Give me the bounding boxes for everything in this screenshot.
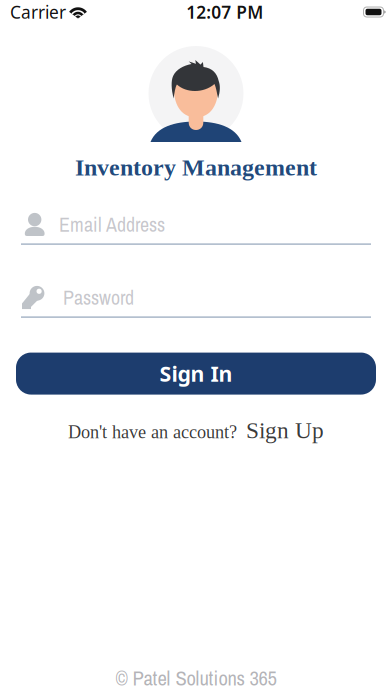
staticText: 12:07 PM <box>186 0 263 23</box>
staticText: Don't have an account? <box>68 422 237 442</box>
button[interactable]: Don't have an account? <box>68 418 324 443</box>
button[interactable]: Sign In <box>16 353 376 395</box>
staticText: Email Address <box>59 211 165 238</box>
staticText: Inventory Management <box>75 154 317 181</box>
staticText: Sign In <box>159 359 232 388</box>
staticText: Password <box>63 284 134 311</box>
staticText: Carrier <box>10 0 66 23</box>
staticText: Sign Up <box>246 418 324 443</box>
staticText: © Patel Solutions 365 <box>115 664 276 692</box>
